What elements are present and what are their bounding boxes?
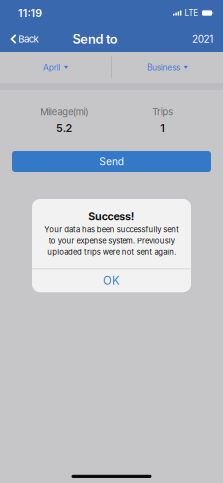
staticText: Mileage(mi): [40, 106, 88, 118]
staticText: Send: [99, 155, 124, 168]
staticText: Back: [18, 33, 39, 45]
staticText: OK: [103, 274, 120, 288]
button[interactable]: Send: [12, 151, 211, 172]
staticText: Trips: [152, 106, 173, 118]
staticText: Send to: [72, 31, 118, 47]
staticText: LTE: [184, 8, 198, 18]
button[interactable]: 2021: [184, 26, 223, 52]
button[interactable]: Back: [0, 26, 45, 52]
button[interactable]: Business: [112, 52, 223, 83]
staticText: 11:19: [18, 6, 42, 19]
staticText: 5.2: [56, 122, 72, 135]
staticText: Success!: [88, 210, 135, 223]
button[interactable]: OK: [32, 269, 191, 292]
staticText: 1: [160, 122, 165, 135]
staticText: April: [43, 62, 60, 73]
button[interactable]: April: [0, 52, 111, 83]
staticText: Business: [147, 62, 180, 73]
staticText: 2021: [192, 33, 213, 45]
staticText: Your data has been successfully sent to …: [44, 225, 179, 256]
